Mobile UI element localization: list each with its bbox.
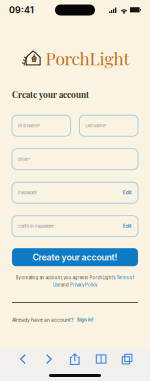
button[interactable]: Terms of <box>116 275 134 280</box>
button[interactable]: Last Name* <box>79 115 138 136</box>
staticText: 09:41 <box>9 5 34 15</box>
button[interactable]: Password* <box>12 182 138 203</box>
button[interactable]: Email* <box>12 149 138 170</box>
button[interactable]: Share <box>62 349 88 369</box>
button[interactable]: Use <box>53 282 60 288</box>
button[interactable]: Create your account! <box>12 248 138 266</box>
button[interactable]: Sign in! <box>77 317 93 322</box>
staticText: Terms of <box>116 275 134 280</box>
staticText: Privacy Policy <box>70 282 97 288</box>
staticText: Edit <box>123 190 132 195</box>
button[interactable]: Privacy Policy <box>70 282 97 288</box>
staticText: Use <box>53 282 60 288</box>
button[interactable]: First Name* <box>12 115 71 136</box>
staticText: Create your account <box>12 89 89 100</box>
staticText: PorchLight <box>45 46 129 69</box>
button[interactable]: Tabs <box>114 349 140 369</box>
button[interactable]: Back <box>10 349 36 369</box>
staticText: Already have an account? <box>12 317 74 323</box>
staticText: Email* <box>18 157 30 162</box>
button[interactable]: Bookmarks <box>88 349 114 369</box>
staticText: Password* <box>18 190 37 195</box>
staticText: First Name* <box>18 123 40 128</box>
staticText: Confirm Password* <box>18 224 54 229</box>
staticText: By creating an account, you agree to Por… <box>15 275 116 280</box>
button[interactable]: Confirm Password* <box>12 216 138 237</box>
staticText: Sign in! <box>77 317 93 322</box>
staticText: and <box>60 282 70 288</box>
staticText: Last Name* <box>85 123 106 128</box>
staticText: Edit <box>123 223 132 229</box>
staticText: Create your account! <box>32 252 117 262</box>
button[interactable]: Forward <box>36 349 62 369</box>
